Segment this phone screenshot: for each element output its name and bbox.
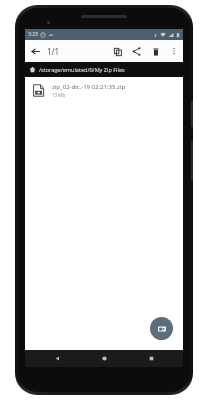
button[interactable]: zip_02-dic.-19 02:21:35.zip <box>25 77 183 103</box>
button[interactable]: Home <box>89 350 119 367</box>
button[interactable]: Back <box>25 41 45 61</box>
staticText: 1/1 <box>47 46 60 57</box>
staticText: zip_02-dic.-19 02:21:35.zip <box>52 83 126 91</box>
button[interactable]: Add zip file <box>150 317 173 340</box>
button[interactable]: Recent apps <box>136 350 166 367</box>
button[interactable]: /storage/emulated/0/My Zip Files <box>25 62 183 77</box>
button[interactable]: Delete <box>146 42 165 61</box>
button[interactable]: Copy <box>108 42 127 61</box>
button[interactable]: Back <box>42 350 72 367</box>
button[interactable]: More options <box>165 42 183 60</box>
staticText: /storage/emulated/0/My Zip Files <box>39 66 125 73</box>
staticText: 13 Mb <box>52 92 66 98</box>
button[interactable]: Share <box>127 42 146 61</box>
staticText: 3:23 <box>28 31 38 38</box>
